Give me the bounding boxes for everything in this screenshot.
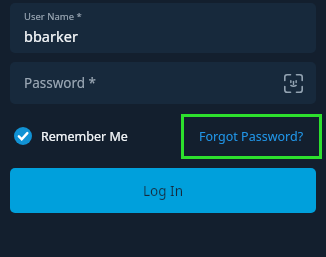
staticText: Password * bbox=[24, 74, 97, 92]
button[interactable]: Password * bbox=[10, 62, 316, 104]
staticText: Remember Me bbox=[41, 128, 128, 145]
staticText: Log In bbox=[143, 182, 183, 200]
staticText: User Name * bbox=[24, 10, 82, 23]
staticText: Forgot Password? bbox=[199, 128, 304, 145]
button[interactable]: Remember Me bbox=[14, 127, 128, 145]
button[interactable]: Face ID sign in bbox=[280, 70, 306, 96]
staticText: bbarker bbox=[24, 26, 78, 46]
button[interactable]: User Name * bbox=[10, 3, 316, 53]
button[interactable]: Log In bbox=[10, 168, 316, 213]
button[interactable]: Forgot Password? bbox=[181, 114, 322, 159]
